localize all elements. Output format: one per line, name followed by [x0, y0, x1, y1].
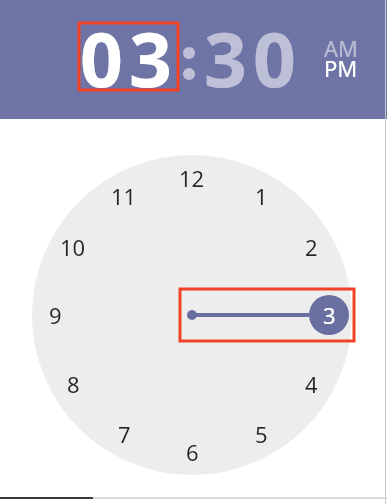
button[interactable]: 5 — [241, 419, 281, 449]
button[interactable]: 4 — [291, 369, 331, 399]
button[interactable]: PM — [324, 53, 358, 83]
button[interactable]: 3 — [309, 300, 349, 330]
staticText: 12 — [179, 163, 205, 193]
staticText: 7 — [118, 419, 131, 449]
button[interactable]: 12 — [172, 163, 212, 193]
button[interactable]: 1 — [241, 181, 281, 211]
button[interactable]: 30 — [204, 7, 302, 109]
staticText: 9 — [49, 300, 62, 330]
staticText: 4 — [305, 369, 318, 399]
button[interactable]: 2 — [291, 232, 331, 262]
button[interactable]: 03 — [80, 7, 178, 109]
button[interactable]: 10 — [53, 232, 93, 262]
staticText: 10 — [60, 232, 86, 262]
button[interactable]: AM — [324, 33, 359, 63]
button[interactable]: 7 — [104, 419, 144, 449]
button[interactable] — [0, 0, 387, 119]
staticText: 11 — [111, 181, 137, 211]
staticText: 3 — [323, 300, 336, 330]
staticText: 5 — [255, 419, 268, 449]
staticText: 6 — [186, 437, 199, 467]
button[interactable]: 8 — [53, 369, 93, 399]
staticText: 1 — [255, 181, 268, 211]
staticText: 8 — [67, 369, 80, 399]
button[interactable]: 9 — [35, 300, 75, 330]
button[interactable]: 6 — [172, 437, 212, 467]
button[interactable]: 11 — [104, 181, 144, 211]
staticText: 2 — [305, 232, 318, 262]
